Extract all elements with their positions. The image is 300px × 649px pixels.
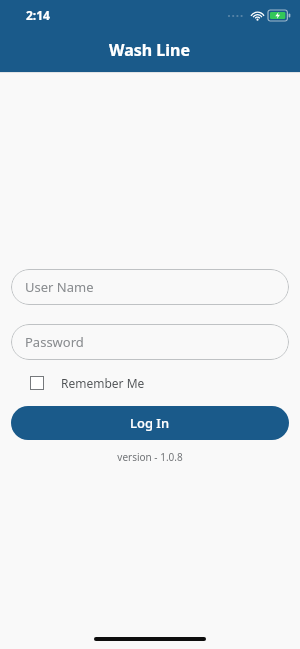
staticText: Wash Line: [109, 39, 191, 61]
button[interactable]: Password: [11, 324, 289, 360]
staticText: Log In: [130, 414, 170, 432]
button[interactable]: User Name: [11, 269, 289, 305]
button[interactable]: Log In: [11, 406, 289, 440]
staticText: Password: [25, 333, 84, 351]
staticText: 2:14: [26, 7, 50, 23]
button[interactable]: Remember Me: [30, 372, 145, 394]
staticText: Remember Me: [61, 375, 145, 391]
staticText: version - 1.0.8: [0, 450, 300, 464]
staticText: User Name: [25, 278, 94, 296]
